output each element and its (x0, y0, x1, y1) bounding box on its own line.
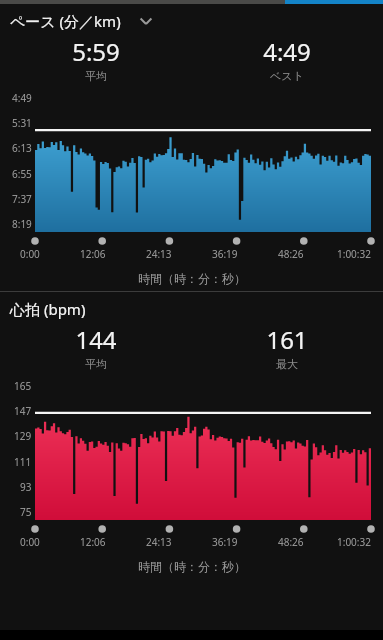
staticText: 161 (266, 323, 308, 356)
staticText: 5:31 (12, 116, 32, 130)
staticText: 4:49 (263, 35, 311, 68)
staticText: 165 (14, 379, 32, 393)
staticText: 144 (75, 323, 117, 356)
staticText: 6:13 (12, 141, 32, 155)
staticText: ベスト (270, 69, 304, 83)
staticText: 147 (14, 404, 32, 418)
staticText: 0:00 (20, 535, 40, 549)
staticText: 111 (14, 455, 32, 469)
staticText: 心拍 (bpm) (10, 299, 86, 319)
staticText: 平均 (85, 357, 107, 371)
staticText: 48:26 (278, 535, 304, 549)
staticText: 時間（時：分：秒） (138, 559, 246, 574)
staticText: 7:37 (12, 192, 32, 206)
staticText: 24:13 (146, 247, 172, 261)
staticText: 75 (20, 505, 32, 519)
staticText: 93 (20, 480, 32, 494)
staticText: 0:00 (20, 247, 40, 261)
staticText: 平均 (85, 69, 107, 83)
staticText: ペース (分／km) (10, 11, 121, 31)
staticText: 最大 (276, 357, 298, 371)
staticText: 24:13 (146, 535, 172, 549)
staticText: 時間（時：分：秒） (138, 271, 246, 286)
staticText: 12:06 (80, 247, 106, 261)
staticText: 5:59 (72, 35, 120, 68)
button[interactable]: ペース (分／km) (0, 4, 383, 32)
staticText: 129 (14, 429, 32, 443)
staticText: 12:06 (80, 535, 106, 549)
staticText: 8:19 (12, 217, 32, 231)
button[interactable]: 心拍 (bpm) (0, 292, 383, 320)
staticText: 1:00:32 (337, 535, 371, 549)
staticText: 6:55 (12, 167, 32, 181)
other: Change metric (137, 12, 155, 30)
staticText: 48:26 (278, 247, 304, 261)
staticText: 1:00:32 (337, 247, 371, 261)
staticText: 36:19 (212, 535, 238, 549)
staticText: 36:19 (212, 247, 238, 261)
staticText: 4:49 (12, 91, 32, 105)
